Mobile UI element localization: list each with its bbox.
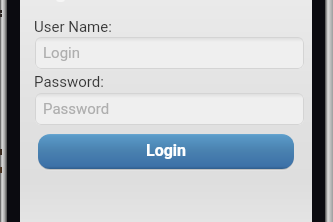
staticText: Login — [146, 141, 187, 160]
button[interactable]: Login — [35, 37, 304, 69]
button[interactable]: Password — [35, 93, 304, 125]
staticText: Password: — [34, 73, 104, 91]
staticText: Password — [43, 100, 110, 118]
button[interactable]: Login — [38, 134, 294, 169]
staticText: User Name: — [34, 18, 112, 36]
staticText: Login — [43, 44, 80, 62]
